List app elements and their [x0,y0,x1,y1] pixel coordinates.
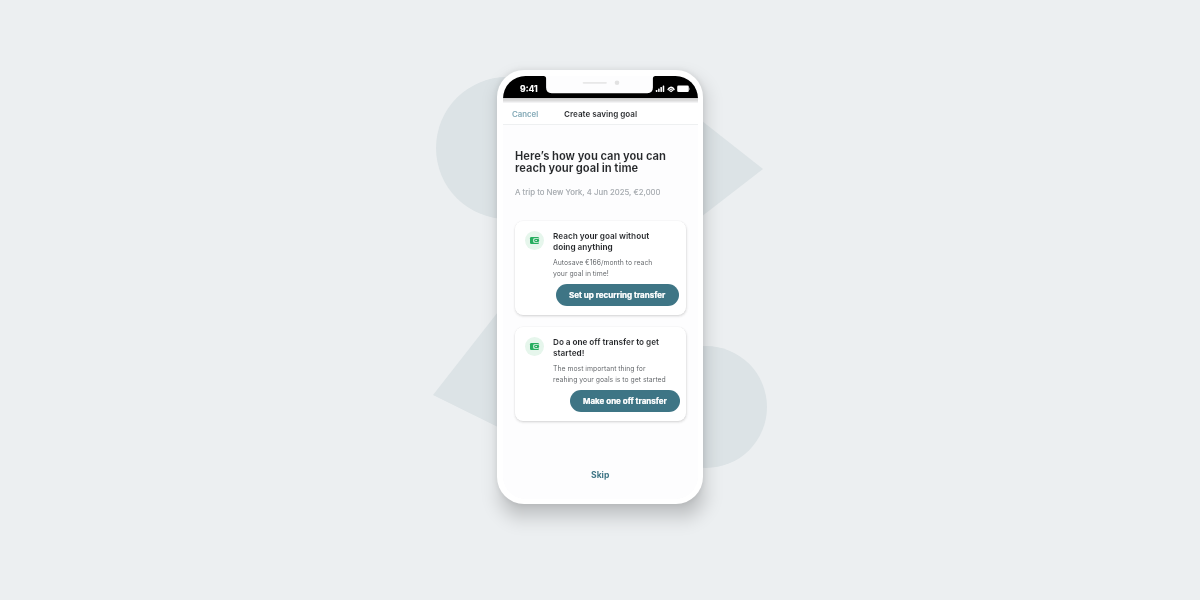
staticText: Here’s how you can you can reach your go… [515,149,666,175]
staticText: Cancel [512,109,539,119]
button[interactable]: Wallet [515,327,686,421]
button[interactable]: Set up recurring transfer [556,284,679,306]
button[interactable]: Wallet [515,221,686,315]
button[interactable]: Make one off transfer [570,390,680,412]
other: Wallet [525,231,544,250]
staticText: Create saving goal [564,109,638,119]
staticText: Skip [591,470,610,480]
staticText: Do a one off transfer to get started! [553,337,660,358]
other: Wallet [525,337,544,356]
staticText: Set up recurring transfer [569,290,666,300]
staticText: A trip to New York, 4 Jun 2025, €2,000 [515,187,661,196]
staticText: 9:41 [520,83,538,94]
button[interactable]: Skip [577,463,624,487]
staticText: Autosave €166/month to reach your goal i… [553,258,653,277]
button[interactable]: Cancel [503,104,547,124]
staticText: The most important thing for reahing you… [553,364,666,383]
staticText: Make one off transfer [583,396,667,406]
staticText: Reach your goal without doing anything [553,231,650,252]
